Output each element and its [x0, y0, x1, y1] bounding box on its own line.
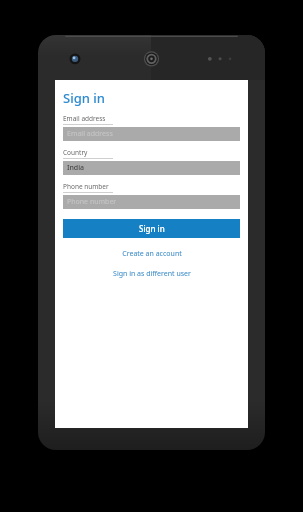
staticText: Email address [67, 129, 113, 139]
button[interactable]: Phone number [63, 195, 240, 209]
button[interactable]: Create an account [63, 248, 240, 260]
staticText: Sign in as different user [113, 269, 191, 279]
button[interactable]: Sign in as different user [63, 268, 240, 280]
staticText: Sign in [139, 223, 165, 234]
staticText: Email address [63, 114, 106, 123]
button[interactable]: Sign in [63, 219, 240, 238]
button[interactable]: India [63, 161, 240, 175]
staticText: India [67, 163, 85, 173]
staticText: Country [63, 148, 88, 157]
button[interactable]: Email address [63, 127, 240, 141]
staticText: Create an account [122, 249, 182, 259]
staticText: Sign in [63, 89, 105, 107]
staticText: Phone number [67, 197, 117, 207]
staticText: Phone number [63, 182, 109, 191]
